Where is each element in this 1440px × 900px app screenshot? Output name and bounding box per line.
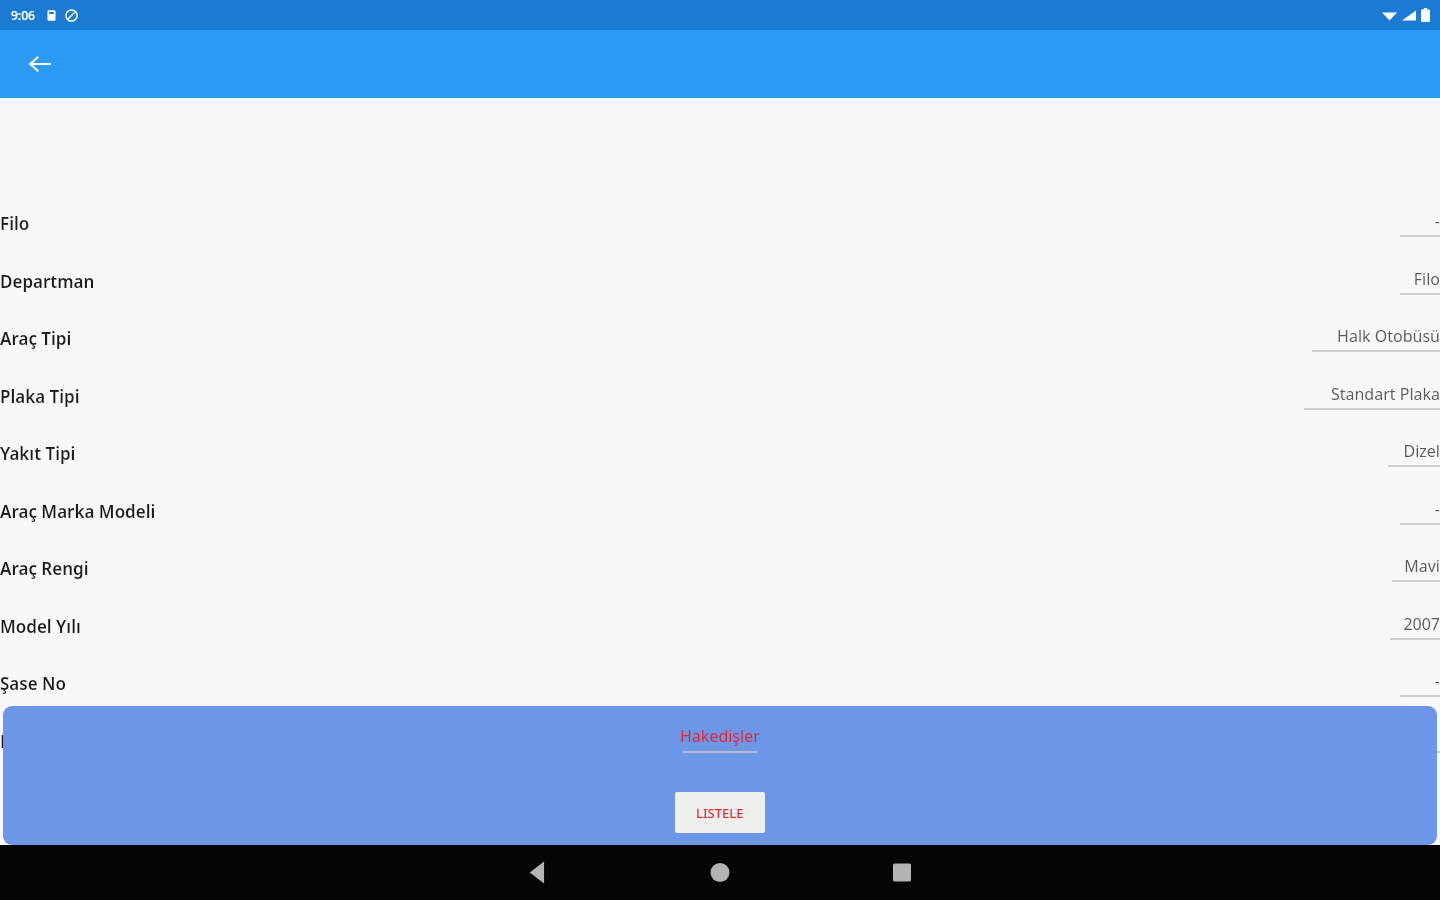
button[interactable]: Araç Tipi bbox=[0, 310, 1440, 367]
staticText: Araç Rengi bbox=[0, 557, 89, 580]
button[interactable]: Yakıt Tipi bbox=[0, 425, 1440, 482]
staticText: Araç Tipi bbox=[0, 327, 72, 350]
staticText: 9:06 bbox=[11, 7, 35, 23]
staticText: Filo bbox=[1413, 268, 1440, 290]
staticText: Dizel bbox=[1403, 440, 1440, 462]
staticText: - bbox=[1434, 210, 1440, 232]
staticText: Hakedişler bbox=[680, 725, 760, 747]
staticText: Araç Marka Modeli bbox=[0, 500, 156, 523]
staticText: - bbox=[1434, 670, 1440, 692]
staticText: - bbox=[1434, 498, 1440, 520]
button[interactable]: LISTELE bbox=[675, 792, 765, 833]
staticText: LISTELE bbox=[696, 804, 744, 822]
staticText: Standart Plaka bbox=[1330, 383, 1440, 405]
staticText: Departman bbox=[0, 270, 95, 293]
staticText: Halk Otobüsü bbox=[1337, 325, 1440, 347]
staticText: 2007 bbox=[1403, 613, 1440, 635]
staticText: Mavi bbox=[1404, 555, 1440, 577]
button[interactable]: Back bbox=[16, 40, 64, 88]
staticText: Filo bbox=[0, 212, 30, 235]
button[interactable]: Hakedişler bbox=[680, 725, 760, 753]
button[interactable]: Filo bbox=[0, 195, 1440, 252]
staticText: Yakıt Tipi bbox=[0, 442, 76, 465]
button[interactable]: Şase No bbox=[0, 655, 1440, 712]
staticText: Şase No bbox=[0, 672, 67, 695]
button[interactable]: Plaka Tipi bbox=[0, 368, 1440, 425]
button[interactable]: Departman bbox=[0, 253, 1440, 310]
button[interactable]: Model Yılı bbox=[0, 598, 1440, 655]
staticText: Motor Seri Numarası bbox=[0, 730, 173, 753]
staticText: Plaka Tipi bbox=[0, 385, 80, 408]
button[interactable]: Motor Seri Numarası bbox=[0, 713, 1440, 770]
button[interactable]: Araç Rengi bbox=[0, 540, 1440, 597]
button[interactable]: Araç Marka Modeli bbox=[0, 483, 1440, 540]
staticText: Model Yılı bbox=[0, 615, 81, 638]
